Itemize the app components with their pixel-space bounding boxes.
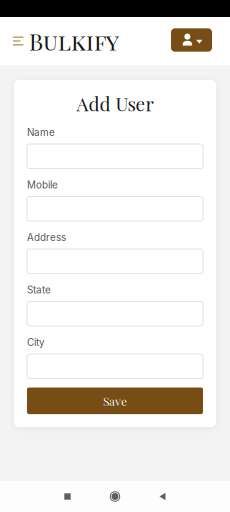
button[interactable]: Address bbox=[27, 249, 203, 273]
staticText: Mobile bbox=[27, 179, 58, 191]
staticText: Add User bbox=[76, 91, 153, 116]
button[interactable]: City bbox=[27, 354, 203, 378]
staticText: Address bbox=[27, 231, 66, 243]
button[interactable]: Back bbox=[152, 486, 172, 506]
button[interactable]: Mobile bbox=[27, 196, 203, 221]
button[interactable]: Home bbox=[105, 486, 125, 506]
staticText: Name bbox=[27, 126, 55, 138]
staticText: Bulkify bbox=[29, 26, 119, 56]
button[interactable]: State bbox=[27, 301, 203, 326]
button[interactable]: Account bbox=[171, 28, 212, 54]
staticText: State bbox=[27, 284, 51, 296]
button[interactable]: Menu bbox=[0, 24, 29, 57]
button[interactable]: Recent apps bbox=[57, 486, 77, 506]
staticText: City bbox=[27, 336, 45, 348]
button[interactable]: Name bbox=[27, 144, 203, 168]
staticText: Save bbox=[103, 393, 127, 409]
button[interactable]: Save bbox=[27, 387, 203, 414]
